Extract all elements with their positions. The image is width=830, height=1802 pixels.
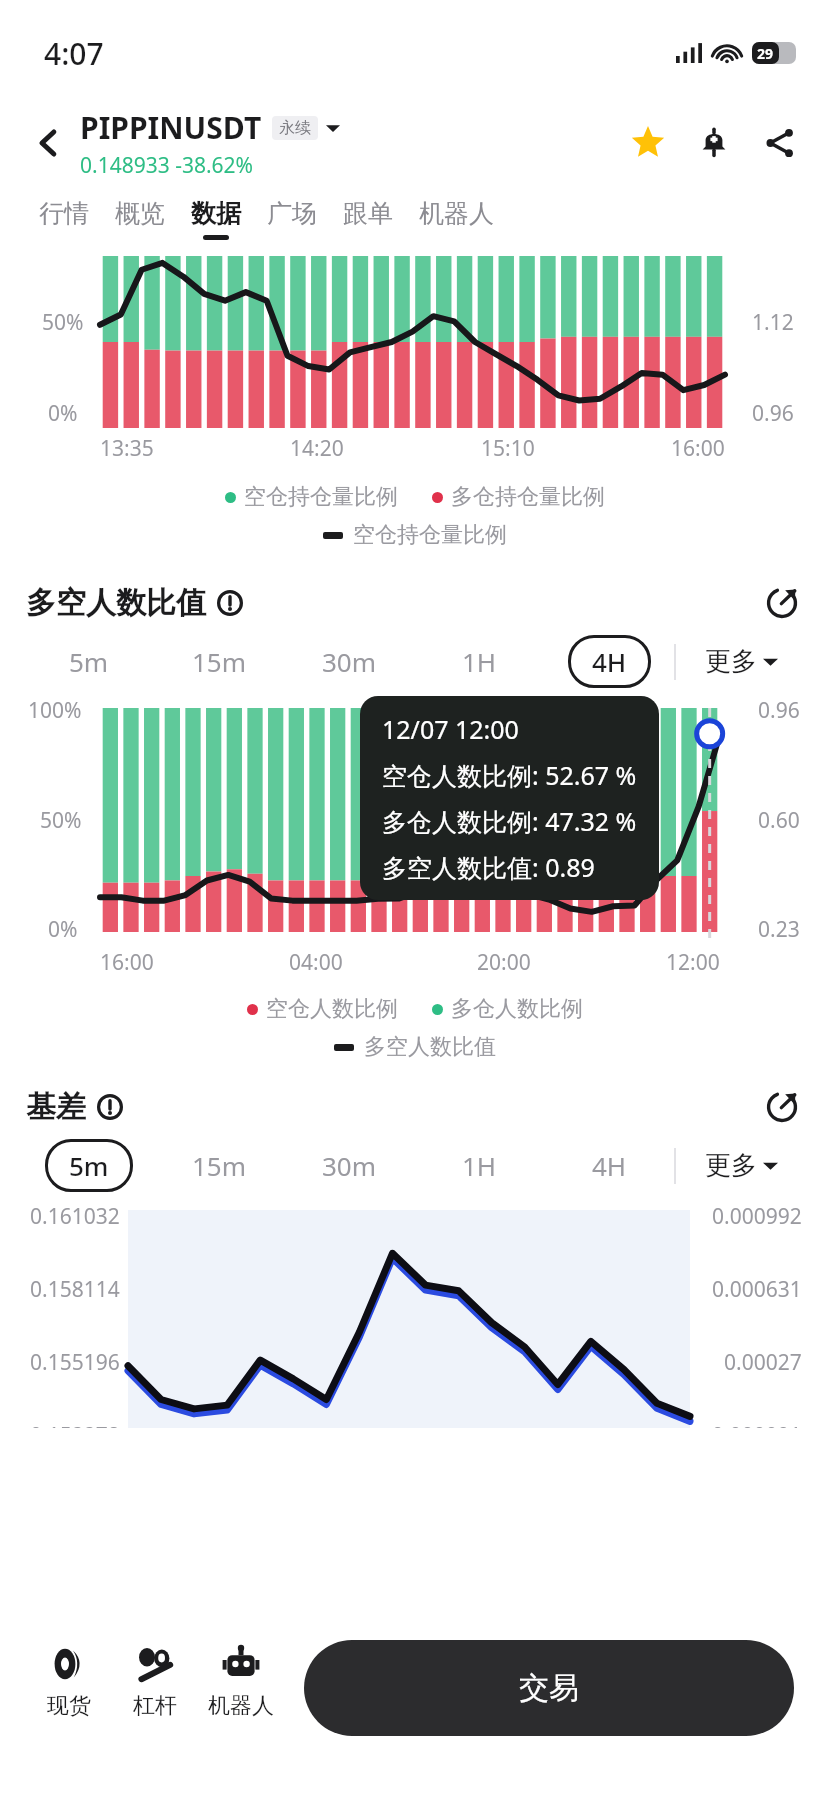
staticText: 0.000631 bbox=[712, 1275, 802, 1304]
staticText: 多空人数比值: 0.89 bbox=[382, 850, 595, 884]
staticText: 空仓持仓量比例 bbox=[353, 521, 507, 549]
staticText: 空仓人数比例: 52.67 % bbox=[382, 758, 637, 792]
button[interactable]: 广场 bbox=[254, 198, 330, 240]
staticText: PIPPINUSDT bbox=[80, 107, 262, 148]
button[interactable]: Info bbox=[96, 1093, 124, 1121]
staticText: 0.96 bbox=[758, 696, 800, 725]
staticText: 0.148933 -38.62% bbox=[80, 151, 254, 180]
button[interactable]: Info bbox=[216, 589, 244, 617]
staticText: 0.60 bbox=[758, 806, 800, 835]
staticText: 5m bbox=[69, 1148, 109, 1183]
staticText: 跟单 bbox=[343, 198, 393, 229]
staticText: 30m bbox=[322, 1148, 377, 1183]
button[interactable]: Favourite bbox=[624, 119, 672, 167]
staticText: 0.155196 bbox=[30, 1348, 120, 1377]
button[interactable]: 5m bbox=[45, 635, 133, 688]
staticText: 机器人 bbox=[208, 1692, 274, 1720]
staticText: 空仓人数比例 bbox=[266, 995, 398, 1023]
button[interactable]: 更多 bbox=[676, 1149, 806, 1182]
staticText: 16:00 bbox=[100, 948, 154, 977]
staticText: 12:00 bbox=[666, 948, 720, 977]
button[interactable]: Back bbox=[26, 120, 72, 166]
staticText: 0% bbox=[48, 915, 78, 944]
staticText: 15:10 bbox=[481, 434, 535, 463]
staticText: 50% bbox=[40, 806, 82, 835]
button[interactable]: 1H bbox=[438, 635, 521, 688]
staticText: 多仓人数比例: 47.32 % bbox=[382, 804, 637, 838]
button[interactable]: 30m bbox=[298, 635, 401, 688]
staticText: 0.23 bbox=[758, 915, 800, 944]
staticText: 0.158114 bbox=[30, 1275, 120, 1304]
staticText: 0.152278 bbox=[30, 1421, 120, 1428]
staticText: 空仓持仓量比例 bbox=[244, 483, 398, 511]
button[interactable]: 机器人 bbox=[406, 198, 507, 240]
staticText: 0% bbox=[48, 399, 78, 428]
button[interactable]: 机器人 bbox=[198, 1640, 284, 1720]
staticText: 多空人数比值 bbox=[364, 1033, 496, 1061]
staticText: 0.000992 bbox=[712, 1202, 802, 1231]
staticText: 1H bbox=[462, 1148, 497, 1183]
button[interactable]: 5m bbox=[45, 1139, 133, 1192]
staticText: 04:00 bbox=[289, 948, 343, 977]
button[interactable]: 4H bbox=[568, 1139, 651, 1192]
button[interactable]: 数据 bbox=[178, 198, 254, 240]
staticText: 4H bbox=[592, 644, 627, 679]
staticText: 机器人 bbox=[419, 198, 494, 229]
staticText: 100% bbox=[28, 696, 82, 725]
staticText: 数据 bbox=[191, 198, 241, 229]
staticText: 更多 bbox=[705, 1149, 757, 1182]
button[interactable]: 杠杆 bbox=[112, 1640, 198, 1720]
button[interactable]: 15m bbox=[168, 1139, 271, 1192]
staticText: 交易 bbox=[519, 1669, 579, 1707]
staticText: 概览 bbox=[115, 198, 165, 229]
button[interactable]: 行情 bbox=[26, 198, 102, 240]
staticText: 0.00027 bbox=[724, 1348, 802, 1377]
staticText: 1.12 bbox=[752, 308, 794, 337]
staticText: 多仓人数比例 bbox=[451, 995, 583, 1023]
staticText: 杠杆 bbox=[133, 1692, 177, 1720]
staticText: 广场 bbox=[267, 198, 317, 229]
staticText: 13:35 bbox=[100, 434, 154, 463]
staticText: 20:00 bbox=[477, 948, 531, 977]
staticText: 29 bbox=[757, 44, 774, 63]
staticText: 30m bbox=[322, 644, 377, 679]
staticText: 15m bbox=[192, 644, 247, 679]
staticText: 1H bbox=[462, 644, 497, 679]
staticText: 更多 bbox=[705, 645, 757, 678]
staticText: 50% bbox=[42, 308, 84, 337]
staticText: 0.96 bbox=[752, 399, 794, 428]
button[interactable]: 跟单 bbox=[330, 198, 406, 240]
button[interactable]: 1H bbox=[438, 1139, 521, 1192]
staticText: 多仓持仓量比例 bbox=[451, 483, 605, 511]
staticText: 4H bbox=[592, 1148, 627, 1183]
button[interactable]: 4H bbox=[568, 635, 651, 688]
staticText: 永续 bbox=[279, 118, 311, 138]
button[interactable]: Share bbox=[756, 119, 804, 167]
button[interactable]: Alerts bbox=[690, 119, 738, 167]
staticText: 多空人数比值 bbox=[26, 584, 206, 622]
button[interactable]: More contracts bbox=[326, 121, 340, 135]
button[interactable]: 交易 bbox=[304, 1640, 794, 1736]
staticText: 4:07 bbox=[44, 33, 104, 74]
staticText: 14:20 bbox=[290, 434, 344, 463]
staticText: 现货 bbox=[47, 1692, 91, 1720]
button[interactable]: Expand bbox=[760, 1085, 804, 1129]
button[interactable]: 30m bbox=[298, 1139, 401, 1192]
staticText: 0.161032 bbox=[30, 1202, 120, 1231]
staticText: -0.000091 bbox=[705, 1421, 802, 1428]
staticText: 16:00 bbox=[671, 434, 725, 463]
staticText: 12/07 12:00 bbox=[382, 712, 519, 746]
button[interactable]: 更多 bbox=[676, 645, 806, 678]
button[interactable]: 概览 bbox=[102, 198, 178, 240]
staticText: 5m bbox=[69, 644, 109, 679]
button[interactable]: 15m bbox=[168, 635, 271, 688]
staticText: 行情 bbox=[39, 198, 89, 229]
button[interactable]: Expand bbox=[760, 581, 804, 625]
button[interactable]: 现货 bbox=[26, 1640, 112, 1720]
staticText: 基差 bbox=[26, 1088, 86, 1126]
staticText: 15m bbox=[192, 1148, 247, 1183]
